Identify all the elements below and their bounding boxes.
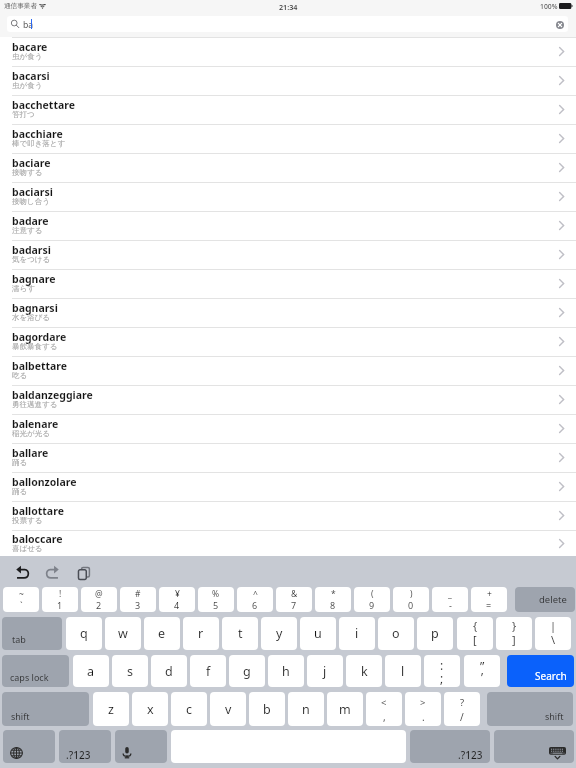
staticText: o (392, 625, 400, 642)
button[interactable]: g (229, 655, 265, 687)
button[interactable]: b (249, 692, 285, 726)
button[interactable]: baldanzeggiare (0, 385, 576, 414)
button[interactable]: e (144, 617, 180, 650)
button[interactable]: { (457, 617, 493, 650)
button[interactable]: Dictation (123, 747, 131, 758)
button[interactable]: x (132, 692, 168, 726)
button[interactable]: * (315, 587, 351, 612)
button[interactable]: _ (432, 587, 468, 612)
staticText: bagnare (12, 272, 56, 286)
staticText: 濡らす (12, 284, 35, 293)
button[interactable]: t (222, 617, 258, 650)
button[interactable]: z (93, 692, 129, 726)
button[interactable]: bagordare (0, 327, 576, 356)
button[interactable] (3, 730, 55, 763)
button[interactable]: ballottare (0, 501, 576, 530)
button[interactable]: baloccare (0, 530, 576, 557)
button[interactable]: k (346, 655, 382, 687)
button[interactable]: o (378, 617, 414, 650)
button[interactable]: ” (464, 655, 500, 687)
button[interactable]: j (307, 655, 343, 687)
button[interactable]: u (300, 617, 336, 650)
button[interactable]: bagnare (0, 269, 576, 298)
button[interactable]: } (496, 617, 532, 650)
button[interactable]: > (405, 692, 441, 726)
button[interactable]: ~ (3, 587, 39, 612)
button[interactable]: ba (7, 16, 568, 32)
button[interactable]: d (151, 655, 187, 687)
staticText: g (243, 663, 251, 680)
button[interactable]: ! (42, 587, 78, 612)
button[interactable]: ballonzolare (0, 472, 576, 501)
button[interactable]: n (288, 692, 324, 726)
button[interactable]: v (210, 692, 246, 726)
button[interactable]: badare (0, 211, 576, 240)
button[interactable]: l (385, 655, 421, 687)
staticText: 稲光が光る (12, 429, 50, 438)
button[interactable]: delete (515, 587, 575, 612)
staticText: 投票する (12, 516, 43, 525)
staticText: caps lock (10, 671, 49, 683)
staticText: r (198, 625, 204, 642)
staticText: = (486, 599, 492, 611)
button[interactable]: shift (2, 692, 89, 726)
button[interactable]: baciarsi (0, 182, 576, 211)
button[interactable]: bacarsi (0, 66, 576, 95)
button[interactable]: ) (393, 587, 429, 612)
button[interactable]: baciare (0, 153, 576, 182)
button[interactable]: + (471, 587, 507, 612)
button[interactable]: p (417, 617, 453, 650)
button[interactable]: i (339, 617, 375, 650)
button[interactable]: q (66, 617, 102, 650)
staticText: 接吻し合う (12, 197, 50, 206)
button[interactable]: @ (81, 587, 117, 612)
button[interactable] (115, 730, 167, 763)
button[interactable]: f (190, 655, 226, 687)
staticText: . (422, 710, 425, 724)
button[interactable]: ¥ (159, 587, 195, 612)
button[interactable]: Clear text (555, 20, 564, 29)
button[interactable]: & (276, 587, 312, 612)
button[interactable]: < (366, 692, 402, 726)
staticText: 通信事業者 (4, 2, 37, 10)
button[interactable]: bacchiare (0, 124, 576, 153)
button[interactable]: a (73, 655, 109, 687)
button[interactable]: Hide keyboard (549, 747, 566, 759)
button[interactable]: # (120, 587, 156, 612)
button[interactable]: h (268, 655, 304, 687)
button[interactable]: tab (2, 617, 62, 650)
button[interactable]: Paste (78, 567, 90, 580)
button[interactable]: balenare (0, 414, 576, 443)
button[interactable]: y (261, 617, 297, 650)
button[interactable]: ballare (0, 443, 576, 472)
button[interactable]: w (105, 617, 141, 650)
button[interactable] (410, 730, 490, 763)
staticText: * (331, 588, 336, 600)
button[interactable]: balbettare (0, 356, 576, 385)
button[interactable]: c (171, 692, 207, 726)
button[interactable]: | (535, 617, 571, 650)
button[interactable]: Redo (46, 565, 59, 579)
button[interactable]: bacare (0, 37, 576, 66)
button[interactable]: badarsi (0, 240, 576, 269)
button[interactable]: m (327, 692, 363, 726)
button[interactable]: s (112, 655, 148, 687)
staticText: h (282, 663, 290, 680)
button[interactable]: : (424, 655, 460, 687)
button[interactable]: r (183, 617, 219, 650)
staticText: tab (12, 633, 26, 645)
button[interactable] (494, 730, 574, 763)
button[interactable]: Next keyboard (10, 747, 23, 759)
button[interactable]: ( (354, 587, 390, 612)
button[interactable]: Undo (16, 565, 29, 579)
button[interactable]: ? (444, 692, 480, 726)
button[interactable]: Search (507, 655, 574, 687)
button[interactable]: bacchettare (0, 95, 576, 124)
button[interactable]: bagnarsi (0, 298, 576, 327)
button[interactable]: ^ (237, 587, 273, 612)
button[interactable]: shift (487, 692, 573, 726)
button[interactable]: % (198, 587, 234, 612)
button[interactable] (59, 730, 111, 763)
button[interactable]: caps lock (2, 655, 69, 687)
